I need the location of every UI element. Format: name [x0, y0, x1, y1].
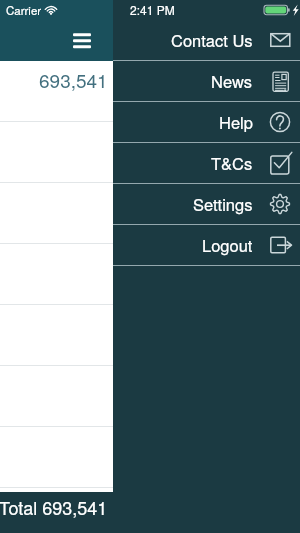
- staticText: 2:41 PM: [130, 1, 175, 18]
- staticText: Logout: [202, 233, 253, 257]
- button[interactable]: News: [113, 61, 300, 101]
- button[interactable]: Settings: [113, 184, 300, 224]
- staticText: News: [211, 69, 253, 93]
- staticText: Settings: [193, 192, 253, 216]
- staticText: T&Cs: [211, 151, 253, 175]
- button[interactable]: Contact Us: [113, 20, 300, 60]
- button[interactable]: T&Cs: [113, 143, 300, 183]
- button[interactable]: 693,541: [0, 61, 113, 121]
- staticText: Total 693,541: [0, 494, 108, 520]
- staticText: Help: [219, 110, 253, 134]
- button[interactable]: Menu: [62, 21, 102, 61]
- staticText: Carrier: [6, 2, 42, 18]
- button[interactable]: Logout: [113, 225, 300, 265]
- staticText: 693,541: [39, 66, 108, 93]
- button[interactable]: Help: [113, 102, 300, 142]
- staticText: Contact Us: [171, 28, 253, 52]
